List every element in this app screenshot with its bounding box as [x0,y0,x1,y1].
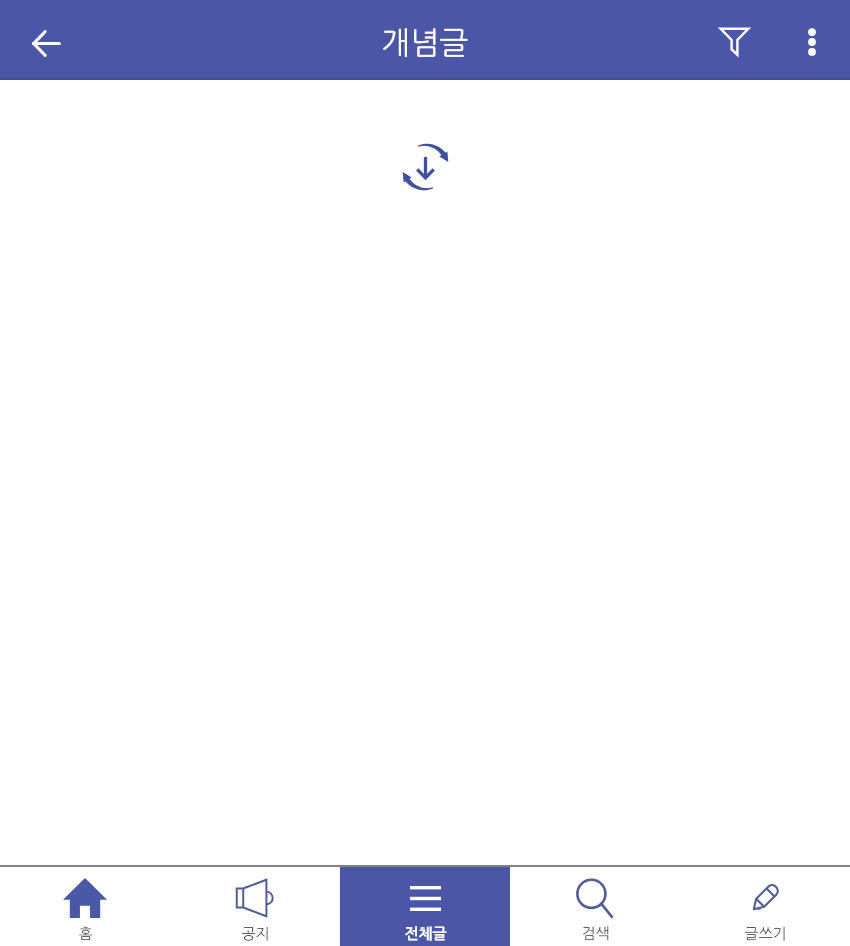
button[interactable]: 검색 [510,867,680,946]
staticText: 검색 [581,926,610,941]
staticText: 전체글 [404,926,447,941]
button[interactable]: Back [22,19,70,67]
button[interactable]: 공지 [170,867,340,946]
staticText: 글쓰기 [744,926,787,941]
staticText: 공지 [241,926,270,941]
button[interactable]: 글쓰기 [680,867,850,946]
button[interactable]: 전체글 [340,867,510,946]
button[interactable]: Filter [700,5,768,77]
staticText: 개념글 [381,27,469,58]
staticText: 홈 [78,926,93,941]
button[interactable]: More options [778,6,846,78]
button[interactable]: 홈 [0,867,170,946]
